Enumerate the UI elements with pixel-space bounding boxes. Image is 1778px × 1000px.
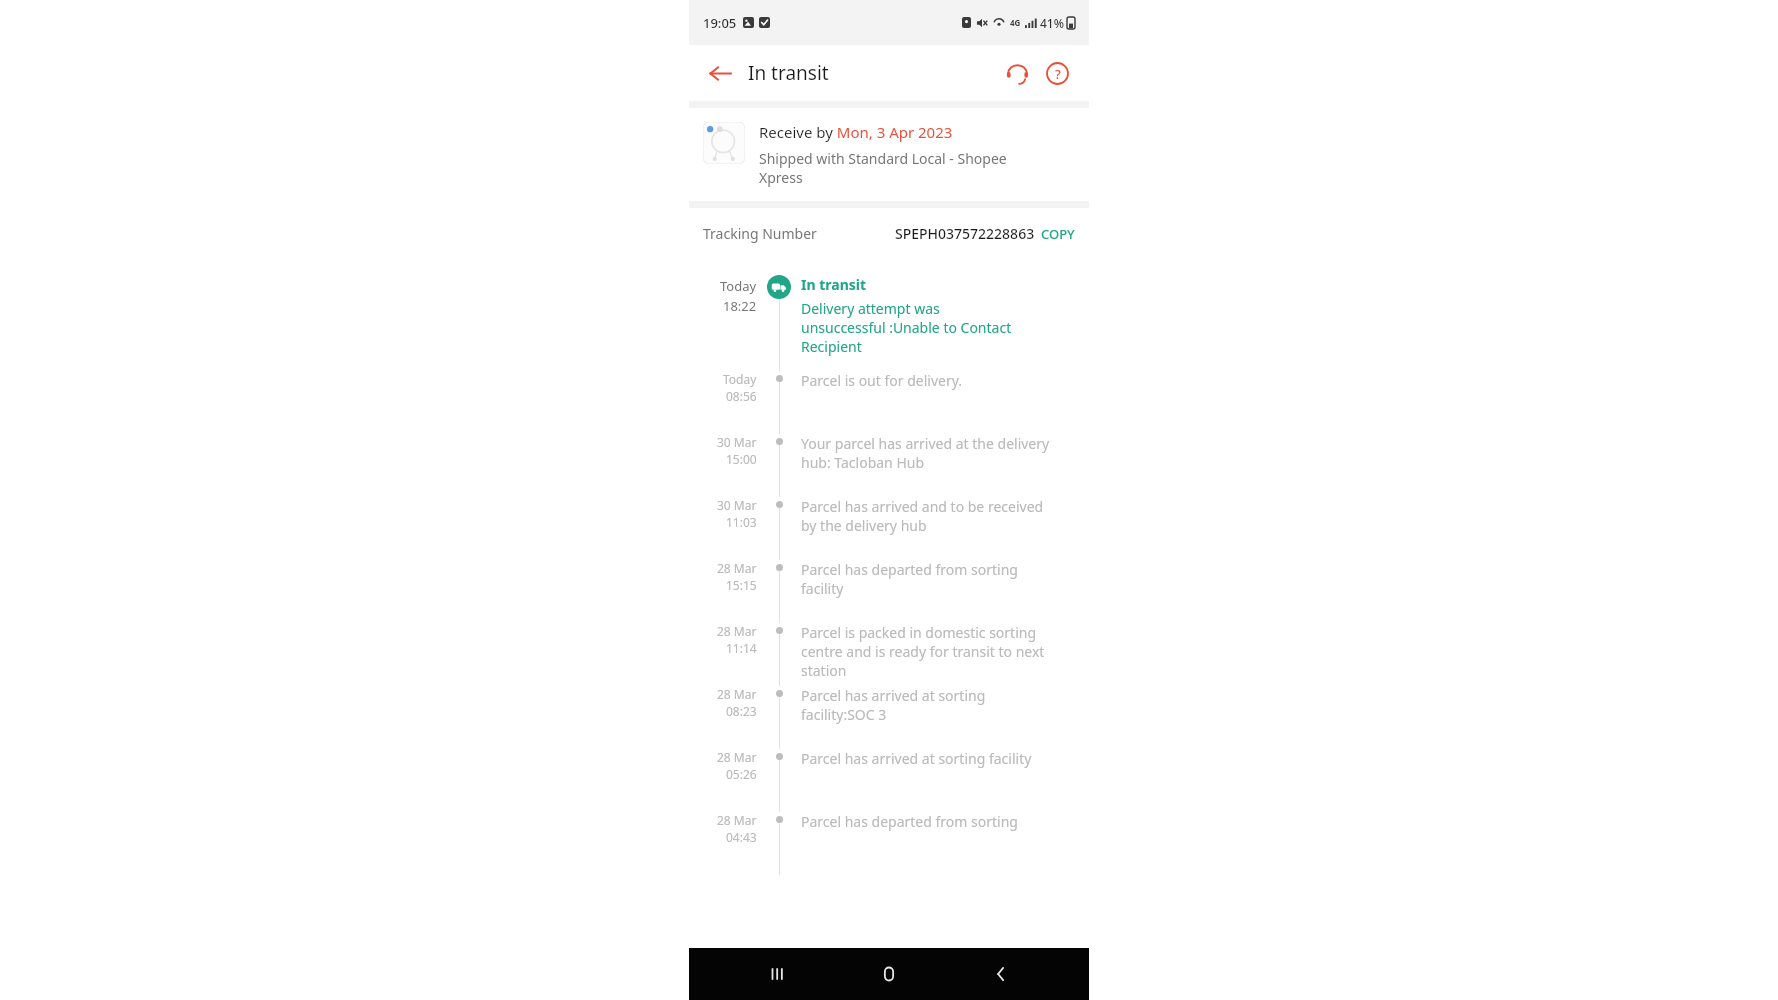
button[interactable]: 28 Mar [703,560,1089,623]
staticText: In transit [801,275,867,294]
staticText: ? [1055,65,1061,83]
staticText: Delivery attempt was unsuccessful :Unabl… [801,299,1012,356]
staticText: Parcel is packed in domestic sorting cen… [801,623,1045,680]
staticText: Parcel has departed from sorting [801,812,1018,831]
staticText: 04:43 [726,829,757,845]
staticText: 28 Mar [717,812,757,828]
button[interactable]: 30 Mar [703,434,1089,497]
staticText: 15:00 [726,451,757,467]
button[interactable]: COPY [1041,225,1075,243]
staticText: 4G [1010,17,1021,28]
staticText: 28 Mar [717,623,757,639]
staticText: Today [720,277,757,295]
staticText: 08:23 [726,703,757,719]
staticText: Parcel has arrived and to be received by… [801,497,1044,535]
button[interactable]: Recents [753,950,801,998]
button[interactable]: 28 Mar [703,749,1089,812]
staticText: 11:14 [726,640,757,656]
button[interactable]: Today [703,371,1089,434]
staticText: Parcel is out for delivery. [801,371,963,390]
staticText: In transit [748,60,829,86]
staticText: Tracking Number [703,224,817,243]
staticText: 28 Mar [717,686,757,702]
staticText: COPY [1041,225,1075,243]
staticText: 41% [1040,15,1064,31]
button[interactable]: Back [977,950,1025,998]
staticText: Parcel has arrived at sorting facility [801,749,1032,768]
staticText: 30 Mar [717,497,757,513]
button[interactable]: 30 Mar [703,497,1089,560]
button[interactable]: Chat with support [998,54,1036,92]
button[interactable]: 28 Mar [703,686,1089,749]
staticText: 05:26 [726,766,757,782]
button[interactable]: 28 Mar [703,812,1089,875]
staticText: Today [723,371,757,387]
staticText: SPEPH037572228863 [895,224,1035,243]
staticText: Parcel has departed from sorting facilit… [801,560,1018,598]
button[interactable]: Tracking Number [689,208,1089,259]
staticText: 15:15 [726,577,757,593]
staticText: 08:56 [726,388,757,404]
staticText: Receive by Mon, 3 Apr 2023 [759,122,953,142]
button[interactable]: Back [702,55,738,91]
staticText: 18:22 [723,297,757,315]
staticText: 19:05 [703,14,737,32]
staticText: 30 Mar [717,434,757,450]
button[interactable]: Receive by Mon, 3 Apr 2023 [689,108,1089,201]
staticText: 28 Mar [717,749,757,765]
staticText: 11:03 [726,514,757,530]
staticText: Parcel has arrived at sorting facility:S… [801,686,986,724]
staticText: 28 Mar [717,560,757,576]
button[interactable]: Today [703,275,1089,371]
staticText: Your parcel has arrived at the delivery … [801,434,1050,472]
button[interactable]: Home [865,950,913,998]
button[interactable]: 28 Mar [703,623,1089,686]
button[interactable]: Help [1038,54,1076,92]
staticText: Shipped with Standard Local - Shopee Xpr… [759,149,1007,187]
